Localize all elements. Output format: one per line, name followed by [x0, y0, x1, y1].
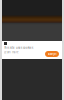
staticText: Learn more [4, 50, 19, 54]
staticText: This site uses cookies [4, 46, 33, 49]
staticText: Accept [47, 52, 56, 56]
button[interactable]: Accept [45, 51, 59, 57]
